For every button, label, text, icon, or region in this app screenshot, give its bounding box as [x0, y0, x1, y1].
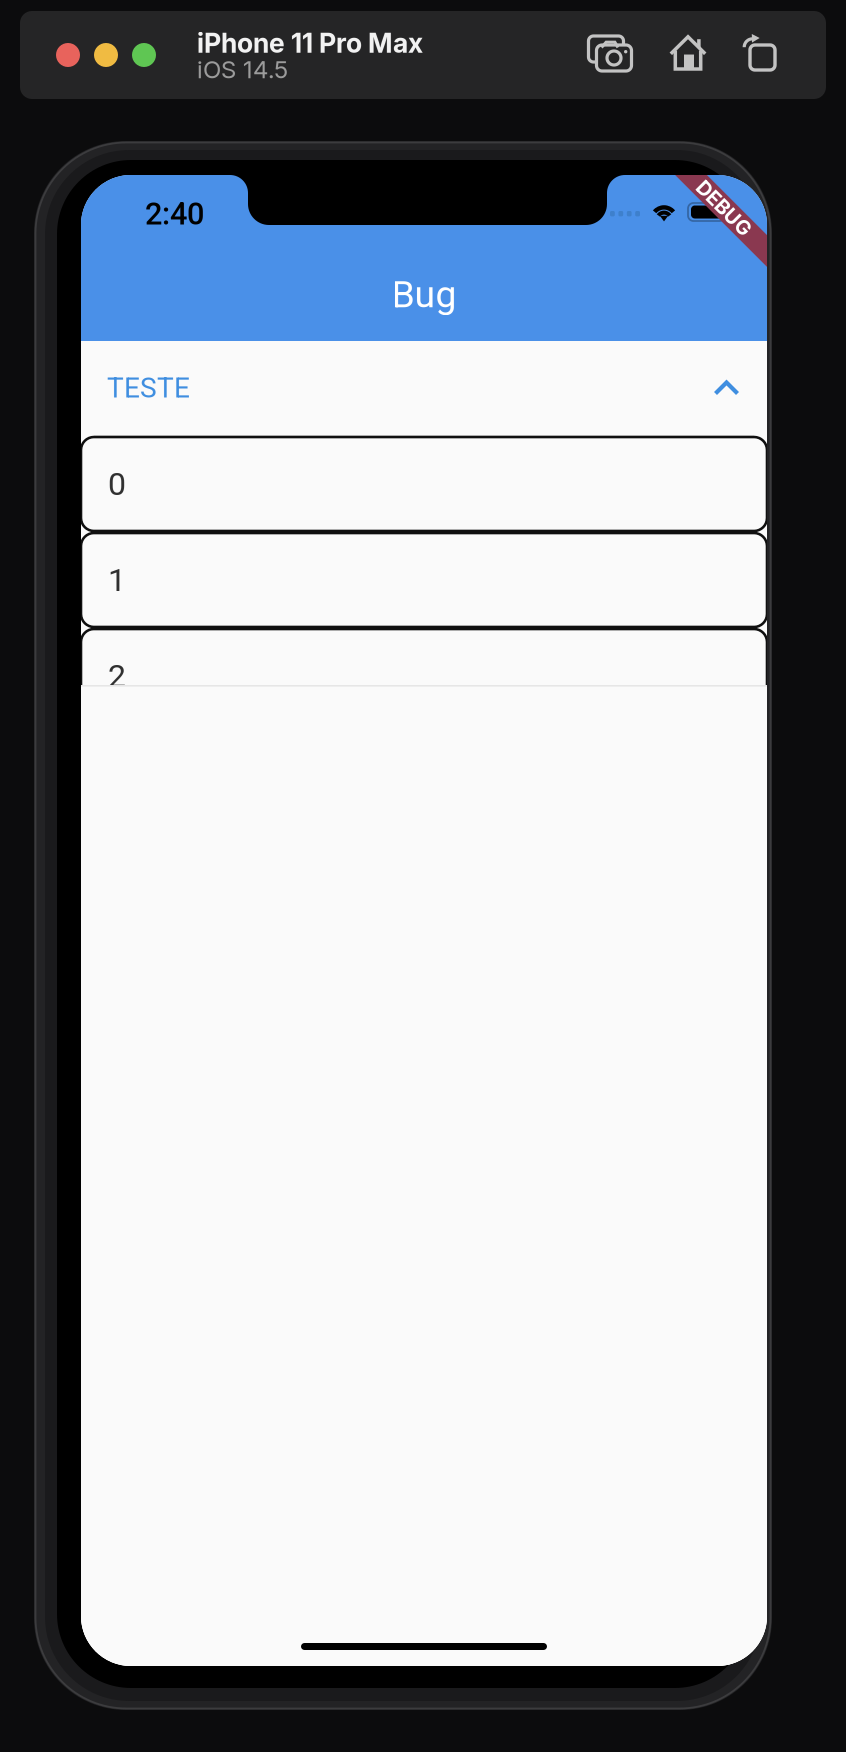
- button[interactable]: 0: [81, 437, 767, 531]
- staticText: 2: [108, 657, 126, 695]
- button[interactable]: Rotate: [724, 21, 790, 77]
- button[interactable]: Zoom: [132, 43, 156, 67]
- button[interactable]: Minimise: [94, 43, 118, 67]
- staticText: 2:40: [145, 196, 204, 232]
- staticText: TESTE: [107, 372, 190, 404]
- staticText: 1: [108, 561, 126, 599]
- button[interactable]: 2: [81, 629, 767, 723]
- button[interactable]: Close: [56, 43, 80, 67]
- staticText: iPhone 11 Pro Max: [197, 27, 423, 59]
- button[interactable]: Home: [656, 25, 722, 81]
- staticText: DEBUG: [687, 201, 756, 225]
- staticText: iOS 14.5: [197, 55, 288, 84]
- staticText: 0: [108, 465, 126, 503]
- button[interactable]: 1: [81, 533, 767, 627]
- button[interactable]: TESTE: [81, 341, 767, 435]
- button[interactable]: Take screenshot: [577, 26, 643, 82]
- staticText: Bug: [391, 273, 456, 316]
